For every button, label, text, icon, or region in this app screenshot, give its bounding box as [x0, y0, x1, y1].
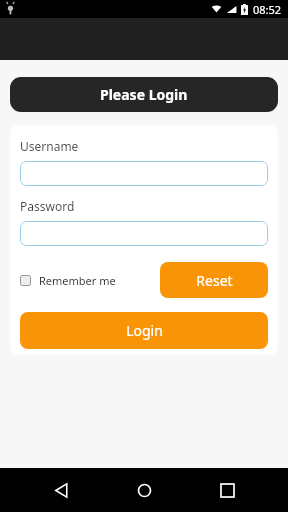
- button[interactable]: Recent apps: [205, 468, 249, 512]
- button[interactable]: Please Login: [10, 77, 278, 112]
- button[interactable]: [20, 221, 268, 246]
- button[interactable]: Remember me: [20, 269, 116, 292]
- staticText: Username: [20, 138, 79, 154]
- button[interactable]: Reset: [160, 262, 268, 298]
- staticText: Reset: [196, 271, 233, 290]
- staticText: 08:52: [253, 2, 282, 17]
- button[interactable]: Login: [20, 312, 268, 349]
- staticText: Please Login: [100, 85, 188, 104]
- button[interactable]: Back: [39, 468, 83, 512]
- staticText: Remember me: [39, 273, 116, 288]
- staticText: Password: [20, 198, 75, 214]
- staticText: Login: [126, 321, 163, 340]
- button[interactable]: Home: [122, 468, 166, 512]
- button[interactable]: [20, 161, 268, 186]
